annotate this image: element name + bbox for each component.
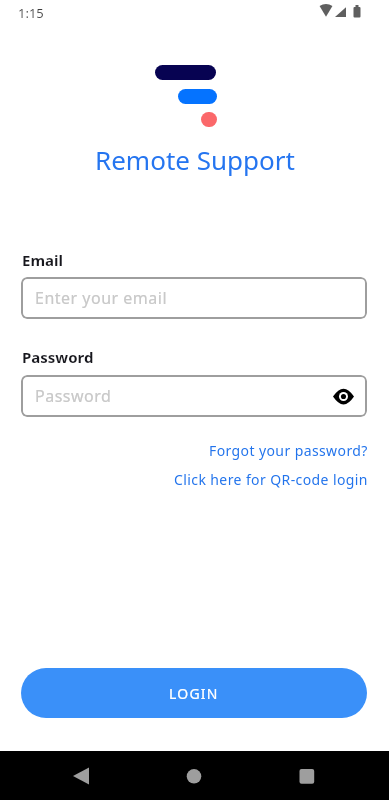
- staticText: Email: [22, 250, 63, 270]
- button[interactable]: [0, 751, 129, 800]
- staticText: 1:15: [18, 4, 44, 22]
- staticText: Password: [22, 347, 94, 367]
- staticText: Password: [35, 385, 112, 407]
- staticText: Enter your email: [35, 287, 168, 309]
- button[interactable]: Password: [21, 375, 367, 417]
- staticText: Remote Support: [95, 142, 295, 177]
- button[interactable]: Forgot your password?: [209, 441, 368, 460]
- button[interactable]: Enter your email: [21, 277, 367, 319]
- button[interactable]: [259, 751, 389, 800]
- staticText: LOGIN: [169, 684, 219, 703]
- button[interactable]: [333, 389, 354, 404]
- button[interactable]: [129, 751, 259, 800]
- button[interactable]: Click here for QR-code login: [174, 470, 368, 489]
- button[interactable]: LOGIN: [21, 668, 367, 718]
